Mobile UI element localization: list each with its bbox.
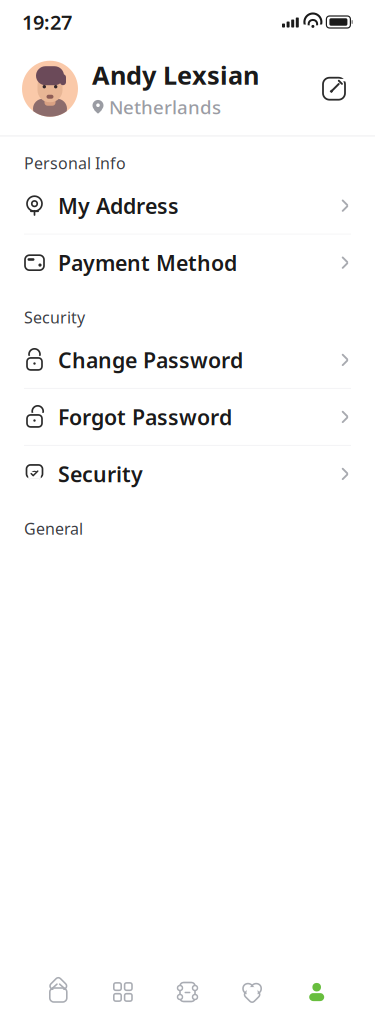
staticText: Payment Method [58,248,237,277]
button[interactable]: Payment Method [0,235,375,291]
staticText: Andy Lexsian [92,58,259,92]
button[interactable]: Security [0,446,375,502]
button[interactable]: Favorites [220,967,284,1017]
button[interactable]: Edit profile [315,70,353,108]
staticText: Security [58,460,143,488]
button[interactable]: Forgot Password [0,389,375,445]
button[interactable]: Home [26,967,91,1017]
staticText: My Address [58,191,179,220]
staticText: Security [24,307,85,328]
staticText: 19:27 [22,9,72,35]
button[interactable]: Profile [284,967,349,1017]
staticText: Personal Info [24,152,126,174]
staticText: Forgot Password [58,403,232,431]
button[interactable]: Change Password [0,332,375,388]
button[interactable]: Tickets [155,967,220,1017]
staticText: Change Password [58,346,243,374]
button[interactable]: Categories [91,967,155,1017]
staticText: Netherlands [109,95,221,119]
staticText: General [24,518,83,539]
button[interactable]: My Address [0,178,375,234]
